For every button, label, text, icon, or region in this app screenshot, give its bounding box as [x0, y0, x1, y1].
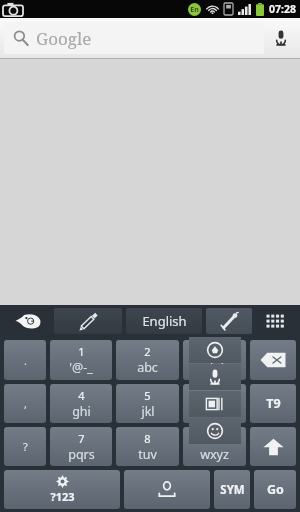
- button[interactable]: 5: [116, 384, 179, 423]
- staticText: mno: [201, 403, 228, 420]
- staticText: En: [190, 5, 199, 15]
- button[interactable]: Voice search: [264, 22, 298, 54]
- staticText: ?: [23, 439, 28, 454]
- staticText: 3: [211, 344, 218, 359]
- staticText: 07:28: [269, 2, 296, 16]
- staticText: pqrs: [68, 446, 95, 463]
- button[interactable]: 8: [116, 427, 179, 466]
- button[interactable]: SHIFT: [250, 427, 296, 466]
- staticText: def: [205, 359, 225, 376]
- staticText: English: [142, 312, 187, 330]
- button[interactable]: Clipboard: [189, 391, 241, 417]
- button[interactable]: Symbols: [4, 470, 120, 509]
- button[interactable]: Voice input: [189, 364, 241, 390]
- staticText: SYM: [220, 482, 245, 498]
- button[interactable]: 9: [183, 427, 246, 466]
- button[interactable]: GO Keyboard menu: [2, 308, 54, 334]
- staticText: 2: [144, 344, 151, 359]
- staticText: tuv: [138, 446, 157, 463]
- staticText: ,: [24, 396, 27, 411]
- button[interactable]: 1: [50, 340, 112, 380]
- staticText: 4: [78, 388, 85, 403]
- button[interactable]: Go: [254, 470, 296, 509]
- button[interactable]: Google: [4, 22, 264, 54]
- staticText: 9: [211, 431, 218, 446]
- button[interactable]: Voice input: [206, 308, 252, 334]
- staticText: 1: [78, 344, 85, 359]
- staticText: Google: [36, 27, 92, 50]
- button[interactable]: 6: [183, 384, 246, 423]
- staticText: '@-_: [69, 359, 93, 376]
- button[interactable]: Emoticons: [189, 418, 241, 444]
- staticText: wxyz: [200, 446, 229, 463]
- staticText: ghi: [72, 403, 91, 420]
- button[interactable]: Edit: [54, 308, 122, 334]
- staticText: 8: [144, 431, 151, 446]
- button[interactable]: Emoji category: [189, 337, 241, 363]
- staticText: jkl: [141, 403, 155, 420]
- button[interactable]: 3: [183, 340, 246, 380]
- button[interactable]: 4: [50, 384, 112, 423]
- staticText: T9: [266, 395, 281, 412]
- staticText: abc: [137, 359, 158, 376]
- staticText: .: [24, 353, 27, 368]
- staticText: 7: [78, 431, 85, 446]
- button[interactable]: Screenshot: [3, 2, 23, 17]
- staticText: ?123: [50, 489, 75, 504]
- button[interactable]: ,: [4, 384, 46, 423]
- button[interactable]: 2: [116, 340, 179, 380]
- button[interactable]: Space 0: [124, 470, 210, 509]
- staticText: 5: [144, 388, 151, 403]
- staticText: 6: [211, 388, 218, 403]
- staticText: Go: [267, 481, 284, 498]
- button[interactable]: T9: [250, 384, 296, 423]
- button[interactable]: SYM: [214, 470, 250, 509]
- button[interactable]: .: [4, 340, 46, 380]
- button[interactable]: ?: [4, 427, 46, 466]
- button[interactable]: DEL: [250, 340, 296, 380]
- button[interactable]: 7: [50, 427, 112, 466]
- button[interactable]: Switch keyboard layout: [252, 308, 298, 334]
- button[interactable]: English: [126, 308, 202, 334]
